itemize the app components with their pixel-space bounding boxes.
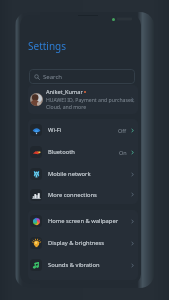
staticText: Sounds & vibration xyxy=(48,261,100,269)
button[interactable]: Display & brightness xyxy=(28,232,138,254)
staticText: Home screen & wallpaper xyxy=(48,217,119,225)
button[interactable]: Home screen & wallpaper xyxy=(28,210,138,232)
button[interactable]: Mobile network xyxy=(28,163,138,185)
staticText: Search xyxy=(43,73,62,81)
staticText: More connections xyxy=(48,191,97,199)
staticText: Mobile network xyxy=(48,170,91,178)
staticText: Wi-Fi xyxy=(48,126,62,134)
button[interactable]: Bluetooth xyxy=(28,141,138,163)
button[interactable]: Aniket_Kumar xyxy=(28,85,138,114)
button[interactable]: Wi-Fi xyxy=(28,119,138,141)
button[interactable]: Search xyxy=(29,69,135,84)
staticText: Display & brightness xyxy=(48,239,105,247)
staticText: Bluetooth xyxy=(48,148,75,156)
button[interactable]: Sounds & vibration xyxy=(28,254,138,276)
staticText: On xyxy=(119,149,127,156)
staticText: HUAWEI ID, Payment and purchases, xyxy=(46,96,135,103)
staticText: Aniket_Kumar xyxy=(46,88,83,96)
button[interactable]: More connections xyxy=(28,185,138,204)
staticText: Cloud, and more xyxy=(46,103,87,110)
staticText: Off xyxy=(118,127,127,134)
staticText: Settings xyxy=(28,39,67,53)
